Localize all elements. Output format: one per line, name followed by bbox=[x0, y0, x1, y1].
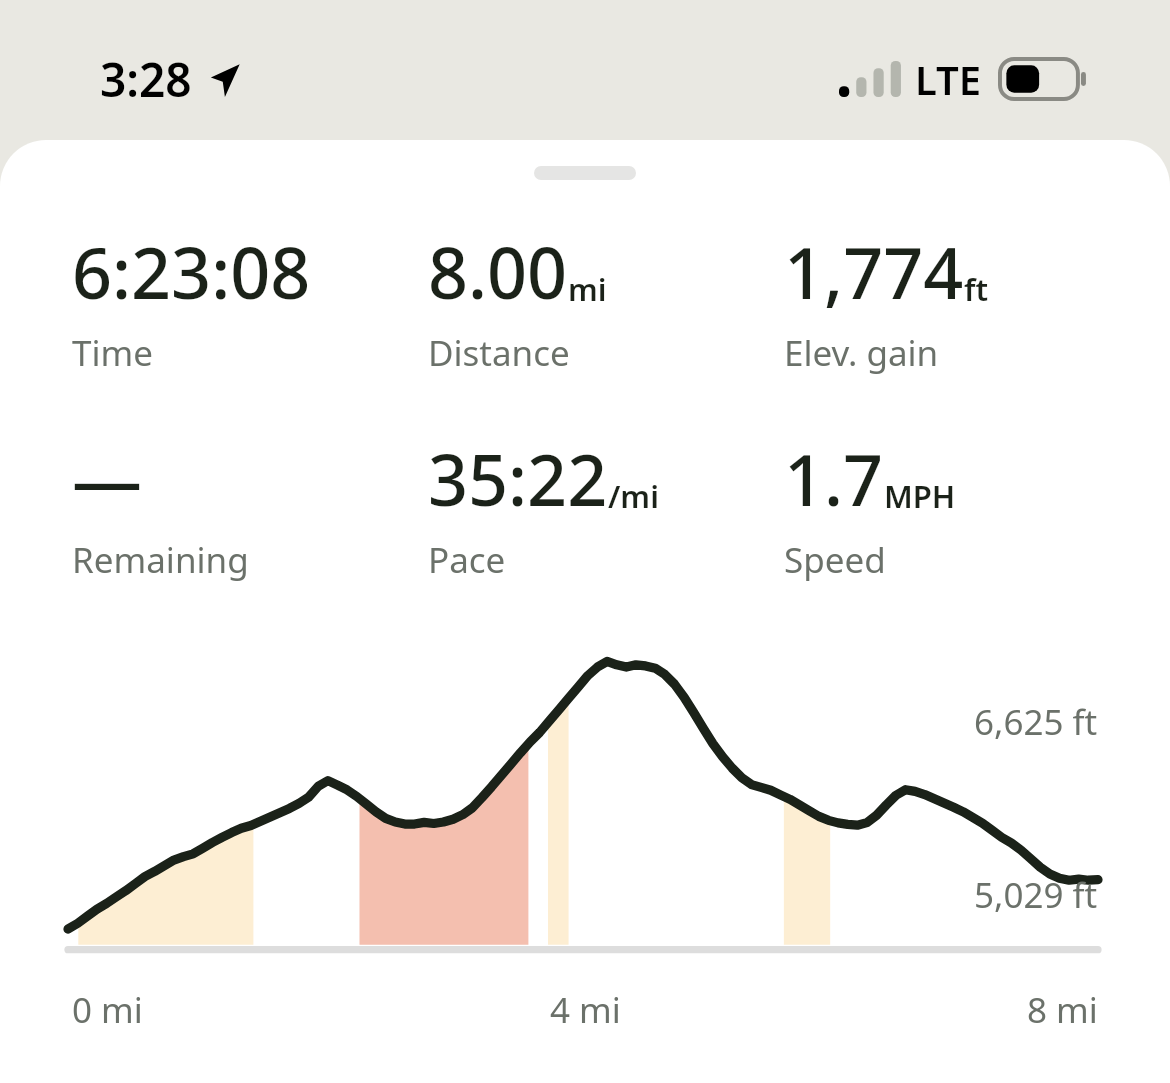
staticText: Speed bbox=[784, 536, 886, 584]
button[interactable]: 8.00 bbox=[428, 224, 784, 377]
staticText: 3:28 bbox=[100, 48, 192, 111]
button[interactable]: 35:22 bbox=[428, 431, 784, 584]
staticText: mi bbox=[568, 268, 607, 310]
staticText: 0 mi bbox=[72, 986, 143, 1034]
staticText: 8 mi bbox=[1027, 986, 1098, 1034]
staticText: 1,774 bbox=[784, 224, 964, 319]
staticText: ft bbox=[964, 268, 989, 310]
staticText: — bbox=[72, 431, 142, 526]
staticText: Elev. gain bbox=[784, 329, 939, 377]
staticText: 35:22 bbox=[428, 431, 608, 526]
staticText: LTE bbox=[915, 52, 982, 106]
staticText: 5,029 ft bbox=[974, 871, 1098, 919]
staticText: Time bbox=[72, 329, 153, 377]
button[interactable]: Drag handle bbox=[534, 166, 636, 180]
staticText: 4 mi bbox=[550, 986, 621, 1034]
staticText: Distance bbox=[428, 329, 570, 377]
staticText: /mi bbox=[608, 475, 659, 517]
button[interactable]: — bbox=[72, 431, 428, 584]
staticText: 8.00 bbox=[428, 224, 568, 319]
other: Cellular signal bbox=[839, 61, 901, 97]
button[interactable]: 6:23:08 bbox=[72, 224, 428, 377]
staticText: MPH bbox=[884, 475, 956, 517]
other: Location active bbox=[208, 62, 244, 98]
button[interactable]: 1.7 bbox=[784, 431, 1140, 584]
staticText: 1.7 bbox=[784, 431, 884, 526]
button[interactable]: 1,774 bbox=[784, 224, 1140, 377]
staticText: 6,625 ft bbox=[974, 698, 1098, 746]
staticText: Remaining bbox=[72, 536, 249, 584]
staticText: Pace bbox=[428, 536, 506, 584]
staticText: 6:23:08 bbox=[72, 224, 311, 319]
button[interactable]: Elevation profile chart bbox=[0, 646, 1170, 976]
other: Battery bbox=[998, 57, 1088, 101]
